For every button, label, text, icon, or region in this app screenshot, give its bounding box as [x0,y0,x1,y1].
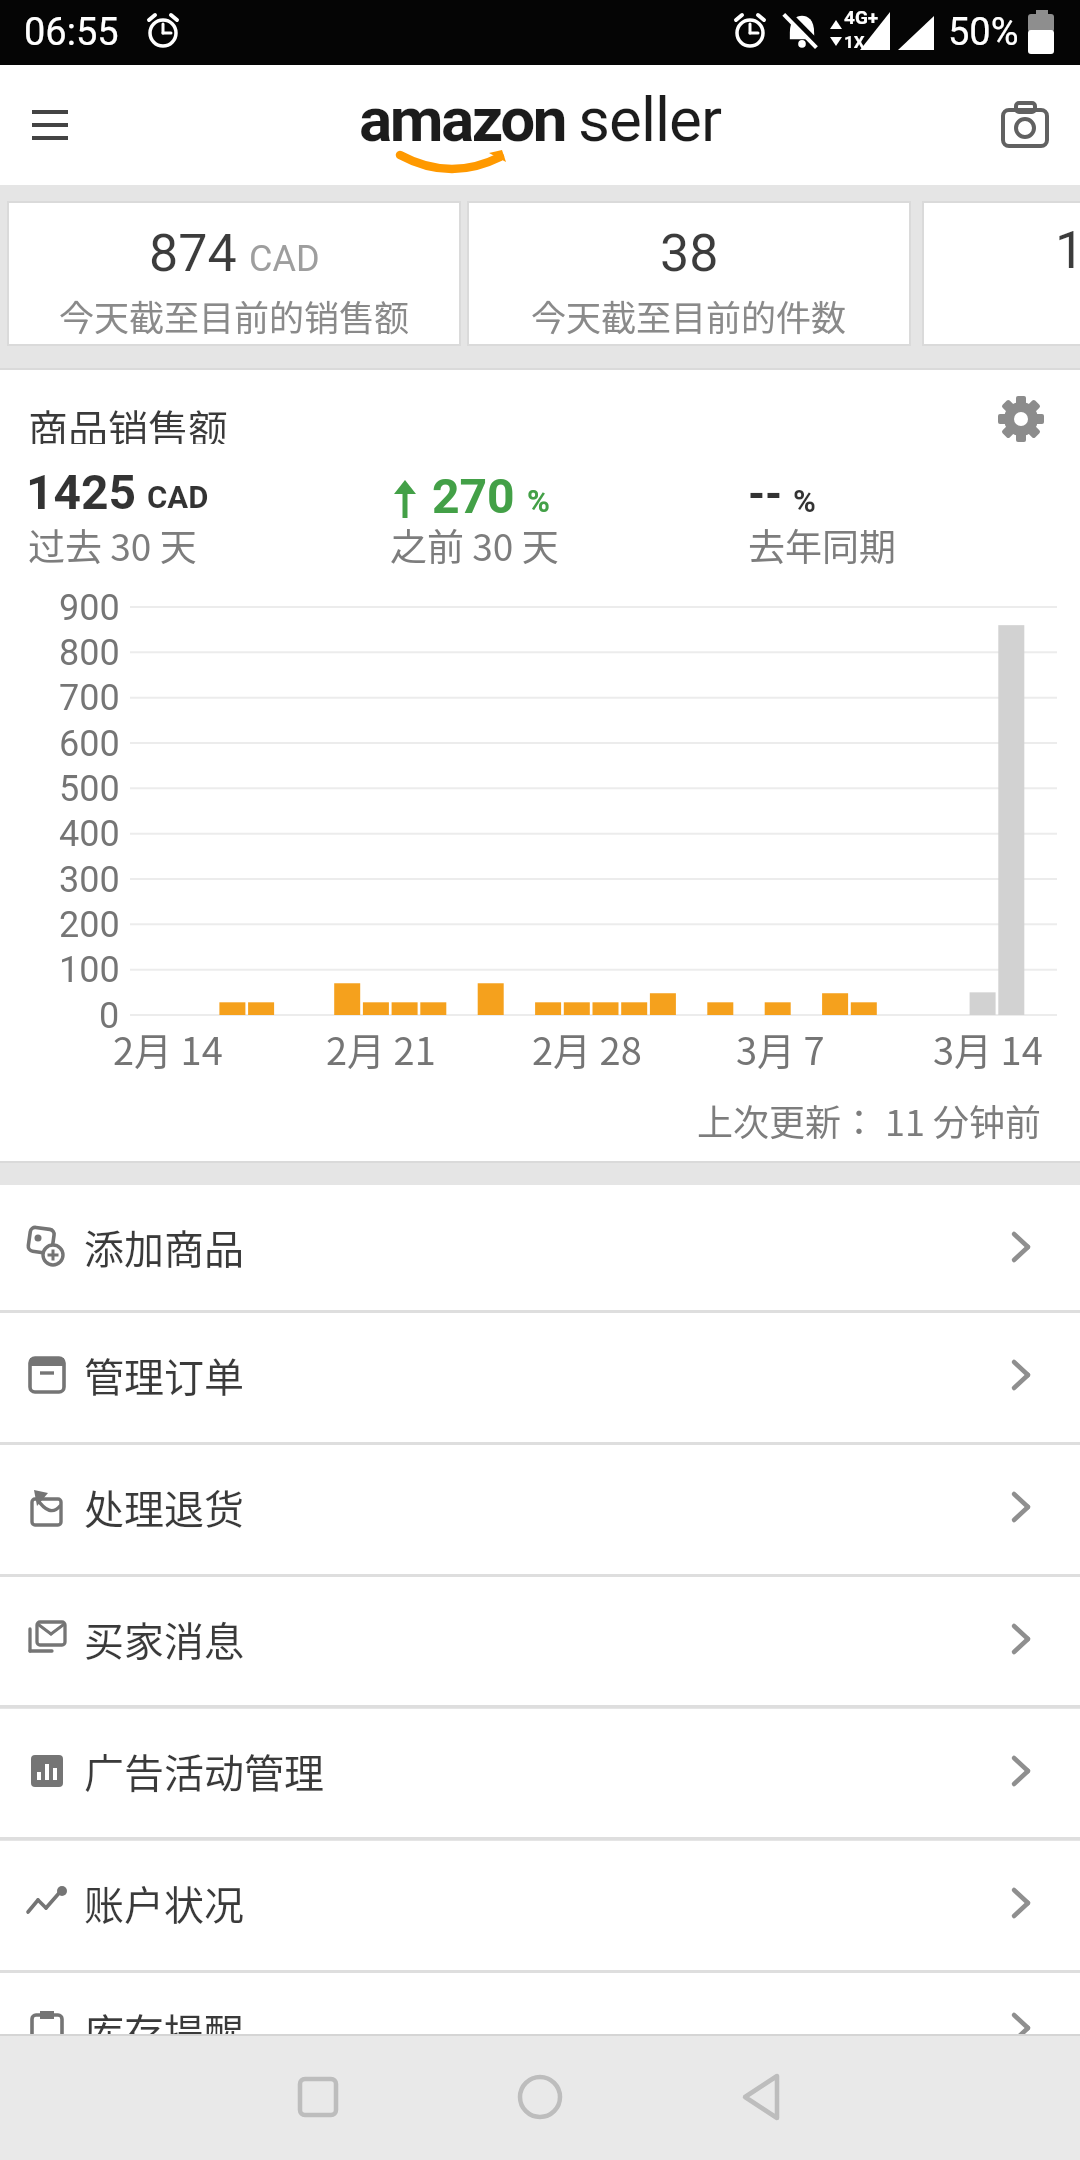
button[interactable]: 库存提醒 [0,1973,1080,2034]
staticText: 2月 14 [113,1021,223,1071]
staticText: 0 [99,995,120,1037]
button[interactable] [14,90,86,160]
staticText: 今天截至目前的件数 [531,290,847,336]
staticText: 管理订单 [84,1346,244,1404]
button[interactable]: 874 [8,202,460,345]
button[interactable]: 买家消息 [0,1577,1080,1705]
staticText: 900 [59,587,120,629]
staticText: 4G+ [844,6,879,28]
staticText: 1425 [26,464,137,520]
staticText: 1X [844,32,865,52]
staticText: 700 [59,677,120,719]
button[interactable] [722,2056,802,2138]
staticText: % [527,483,550,519]
button[interactable]: 17 [923,202,1080,345]
staticText: CAD [147,479,209,515]
staticText: 300 [59,859,120,901]
staticText: CAD [249,238,320,280]
button[interactable] [985,90,1065,160]
staticText: 3月 14 [933,1021,1043,1071]
staticText: 2月 21 [326,1021,436,1071]
button[interactable]: 管理订单 [0,1313,1080,1442]
button[interactable] [278,2056,358,2138]
staticText: seller [578,83,721,156]
staticText: 今天截至目前的销售额 [59,290,410,336]
staticText: 商品销售额 [28,398,228,444]
staticText: 处理退货 [84,1478,244,1536]
button[interactable]: 添加商品 [0,1185,1080,1310]
staticText: 之前 30 天 [390,518,559,566]
staticText: 过去 30 天 [28,518,197,566]
button[interactable] [500,2056,580,2138]
staticText: % [793,483,816,519]
button[interactable]: 38 [468,202,910,345]
staticText: 600 [59,723,120,765]
staticText: 17 [1055,220,1080,281]
staticText: 800 [59,632,120,674]
staticText: 买家消息 [84,1610,244,1668]
button[interactable]: 账户状况 [0,1841,1080,1970]
staticText: 库存提醒 [84,2002,244,2060]
staticText: 添加商品 [84,1218,244,1276]
staticText: 3月 7 [736,1021,825,1071]
staticText: -- [748,468,783,518]
staticText: 2月 28 [532,1021,642,1071]
staticText: 400 [59,813,120,855]
staticText: 上次更新： 11 分钟前 [697,1094,1042,1146]
button[interactable]: 广告活动管理 [0,1709,1080,1837]
staticText: 100 [59,949,120,991]
staticText: amazon [359,83,566,156]
staticText: 38 [660,223,719,284]
staticText: 874 [149,223,237,284]
staticText: 去年同期 [748,518,896,566]
staticText: 500 [59,768,120,810]
staticText: 06:55 [24,10,119,55]
staticText: 账户状况 [84,1874,244,1932]
button[interactable]: 处理退货 [0,1445,1080,1574]
button[interactable] [986,384,1056,454]
staticText: 270 [432,468,515,524]
staticText: 广告活动管理 [84,1742,324,1800]
staticText: 200 [59,904,120,946]
staticText: 50% [948,10,1019,55]
